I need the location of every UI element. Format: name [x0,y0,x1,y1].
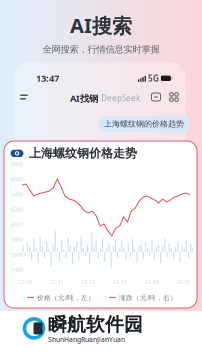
staticText: 瞬航软件园 [48,313,143,336]
staticText: 12-12 [81,278,95,286]
staticText: 12-15 [176,278,190,286]
staticText: AI搜索 [70,12,132,39]
staticText: AI找钢 [70,92,98,104]
staticText: 6400 [11,191,23,198]
staticText: 13:47 [36,72,59,84]
staticText: 涨跌（元/吨，右） [119,293,177,302]
staticText: 6000 [11,221,23,228]
staticText: 6800 [11,161,23,168]
staticText: 6600 [11,176,23,183]
button[interactable]: Menu [20,91,34,103]
staticText: ShunHangRuanJianYuan [48,335,125,344]
staticText: 5G [148,73,159,84]
staticText: 上海螺纹钢的价格趋势 [104,119,184,129]
staticText: 全网搜索，行情信息实时掌握 [42,44,159,55]
staticText: 12-13 [113,278,127,286]
staticText: 5600 [11,251,23,258]
staticText: DeepSeek [101,93,140,103]
staticText: 5400 [11,266,23,273]
staticText: 12-11 [50,278,64,286]
staticText: 12-10 [18,278,32,286]
staticText: 6200 [11,206,23,213]
staticText: 价格（元/吨，左） [37,293,95,302]
button[interactable]: Mini apps [169,92,179,102]
staticText: 5800 [11,236,23,243]
staticText: 12-14 [144,278,158,286]
staticText: 上海螺纹钢价格走势 [29,146,137,161]
button[interactable]: Messages [151,92,161,102]
